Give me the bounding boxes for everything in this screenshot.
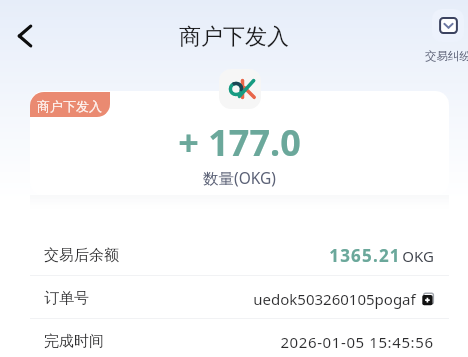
- staticText: 交易纠纷: [425, 49, 468, 63]
- staticText: 2026-01-05 15:45:56: [280, 332, 434, 352]
- staticText: uedok503260105pogaf: [253, 289, 416, 309]
- staticText: 数量(OKG): [203, 167, 276, 188]
- staticText: 完成时间: [44, 332, 104, 351]
- staticText: 订单号: [44, 289, 89, 308]
- button[interactable]: Copy: [422, 293, 434, 306]
- staticText: 商户下发入: [37, 98, 102, 114]
- staticText: 1365.21: [329, 244, 401, 267]
- staticText: 商户下发入: [179, 23, 289, 51]
- button[interactable]: Back: [0, 11, 50, 61]
- staticText: 交易后余额: [44, 246, 119, 265]
- button[interactable]: 订单号: [30, 276, 449, 318]
- staticText: + 177.0: [178, 118, 301, 167]
- button[interactable]: 交易后余额: [30, 233, 449, 275]
- button[interactable]: 交易纠纷: [425, 9, 468, 62]
- button[interactable]: 完成时间: [30, 319, 449, 357]
- staticText: OKG: [402, 246, 434, 266]
